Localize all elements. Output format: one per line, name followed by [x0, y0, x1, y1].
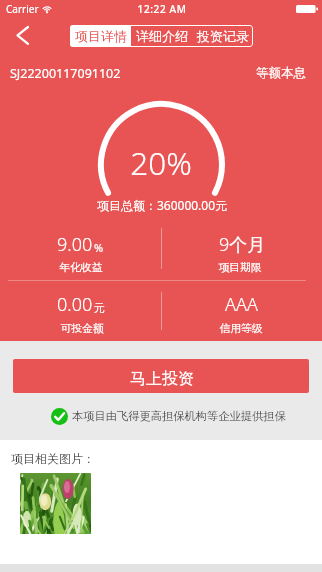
staticText: 项目总额：360000.00元 [1, 197, 322, 213]
staticText: AAA [225, 292, 258, 317]
staticText: % [94, 240, 104, 255]
staticText: 0.00 [57, 292, 93, 317]
button[interactable]: 详细介绍 [131, 25, 192, 47]
staticText: 项目详情 [75, 28, 127, 44]
staticText: 可投金额 [0, 322, 243, 336]
staticText: 项目期限 [79, 261, 322, 275]
staticText: 9个月 [219, 232, 266, 257]
staticText: 年化收益 [0, 261, 242, 275]
staticText: 投资记录 [197, 28, 249, 44]
staticText: Carrier [6, 2, 39, 16]
button[interactable]: 项目详情 [70, 25, 131, 47]
staticText: 9.00 [57, 232, 93, 257]
button[interactable]: 马上投资 [13, 359, 309, 393]
button[interactable]: 投资记录 [192, 25, 253, 47]
staticText: 元 [94, 301, 105, 315]
staticText: 项目相关图片： [11, 451, 95, 466]
staticText: 马上投资 [130, 369, 194, 389]
staticText: 信用等级 [80, 322, 322, 336]
staticText: 本项目由飞得更高担保机构等企业提供担保 [72, 409, 286, 423]
button[interactable]: 项目图片 [20, 473, 91, 534]
staticText: 等额本息 [0, 65, 306, 81]
staticText: 12:22 AM [1, 2, 322, 16]
staticText: 20% [0, 141, 322, 184]
staticText: 详细介绍 [136, 28, 188, 44]
button[interactable]: Back [6, 22, 42, 52]
staticText: SJ22200117091102 [10, 65, 121, 82]
